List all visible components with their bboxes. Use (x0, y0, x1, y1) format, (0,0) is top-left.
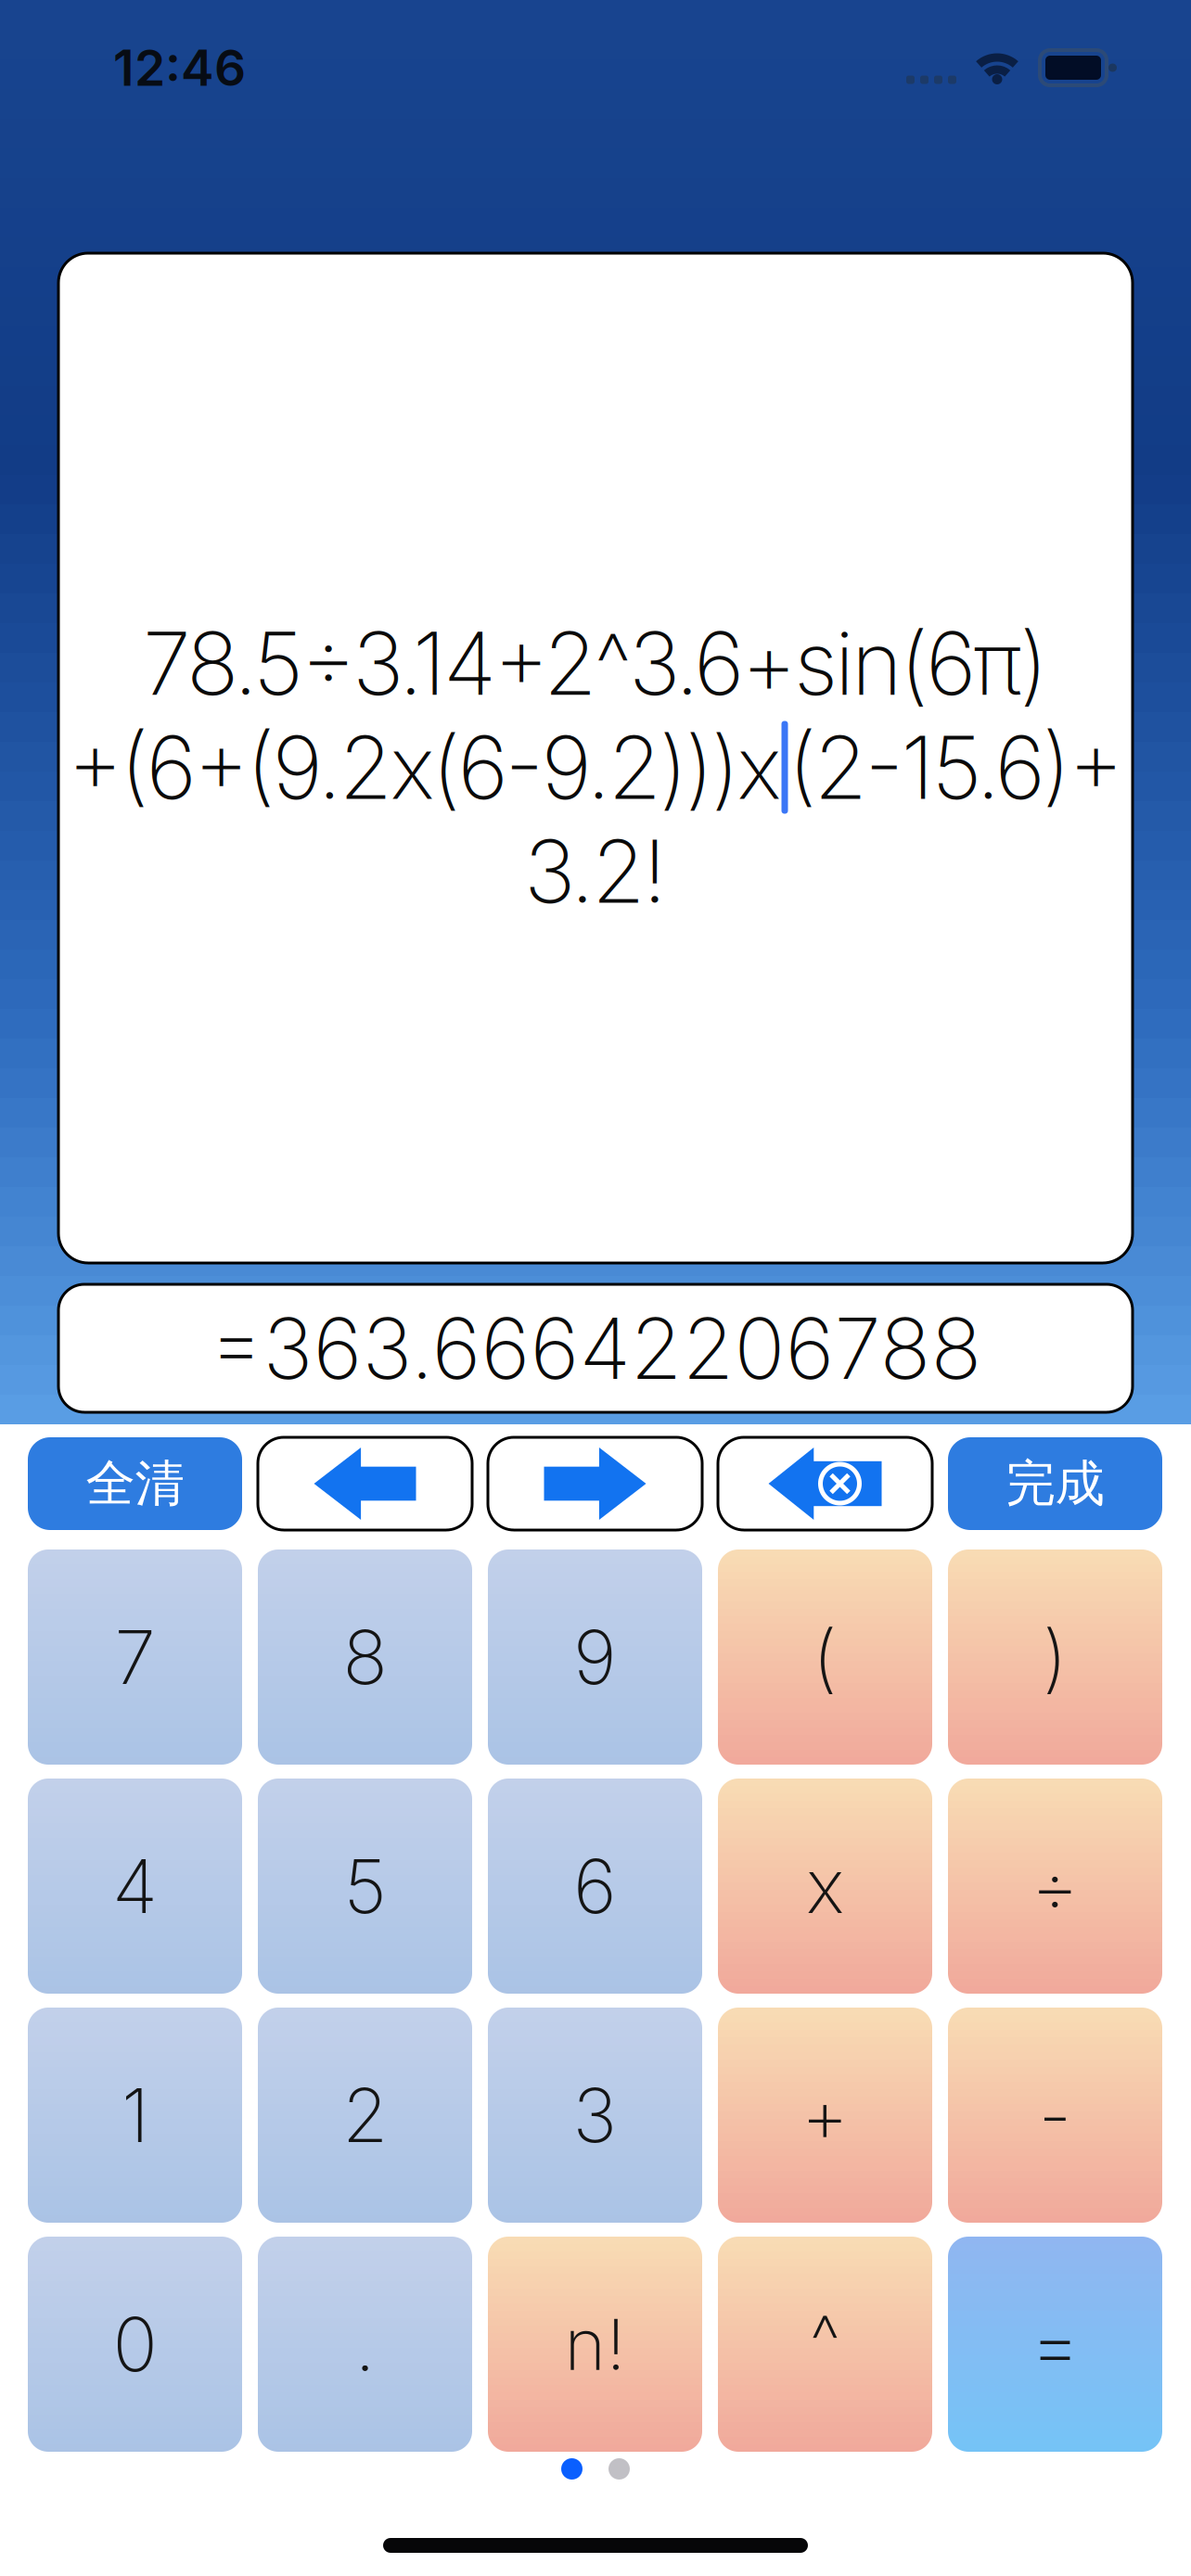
staticText: 2 (342, 2071, 388, 2159)
button[interactable]: 5 (258, 1779, 472, 1994)
button[interactable] (488, 1437, 702, 1530)
button[interactable]: 2 (258, 2008, 472, 2223)
staticText: 3.2! (524, 820, 667, 922)
staticText: 3 (573, 2071, 617, 2159)
button[interactable]: 全清 (28, 1437, 242, 1530)
staticText: 5 (344, 1842, 386, 1930)
button[interactable]: x (718, 1779, 932, 1994)
button[interactable]: 3 (488, 2008, 702, 2223)
button[interactable]: ^ (718, 2237, 932, 2452)
staticText: =363.66642206788 (209, 1299, 982, 1398)
staticText: - (1038, 2071, 1072, 2159)
button[interactable]: ) (948, 1549, 1162, 1765)
button[interactable]: 0 (28, 2237, 242, 2452)
staticText: +(6+(9.2x(6-9.2)))x (67, 716, 781, 818)
staticText: ÷ (1031, 1842, 1079, 1930)
button[interactable]: 9 (488, 1549, 702, 1765)
staticText: 6 (573, 1842, 617, 1930)
button[interactable] (258, 1437, 472, 1530)
button[interactable]: 4 (28, 1779, 242, 1994)
button[interactable]: ÷ (948, 1779, 1162, 1994)
button[interactable] (561, 2458, 630, 2480)
staticText: 78.5÷3.14+2^3.6+sin(6π) (143, 612, 1048, 714)
staticText: ^ (810, 2298, 840, 2383)
staticText: 全清 (86, 1453, 184, 1514)
staticText: x (806, 1842, 844, 1930)
button[interactable]: 1 (28, 2008, 242, 2223)
staticText: ( (813, 1613, 838, 1701)
staticText: 8 (343, 1613, 387, 1701)
button[interactable]: + (718, 2008, 932, 2223)
staticText: ) (1043, 1613, 1068, 1701)
button[interactable]: = (948, 2237, 1162, 2452)
staticText: 12:46 (113, 38, 246, 97)
staticText: n! (564, 2303, 626, 2386)
button[interactable]: n! (488, 2237, 702, 2452)
button[interactable]: 8 (258, 1549, 472, 1765)
staticText: = (1030, 2298, 1081, 2391)
staticText: 1 (121, 2071, 149, 2159)
button[interactable]: . (258, 2237, 472, 2452)
staticText: (2-15.6)+ (788, 716, 1124, 818)
staticText: 9 (573, 1613, 617, 1701)
staticText: 7 (115, 1613, 155, 1701)
staticText: . (355, 2300, 375, 2388)
button[interactable]: - (948, 2008, 1162, 2223)
button[interactable]: ( (718, 1549, 932, 1765)
button[interactable]: 6 (488, 1779, 702, 1994)
button[interactable]: 完成 (948, 1437, 1162, 1530)
staticText: 完成 (1006, 1453, 1104, 1514)
staticText: 4 (112, 1842, 158, 1930)
button[interactable] (718, 1437, 932, 1530)
staticText: + (801, 2071, 849, 2159)
button[interactable]: 7 (28, 1549, 242, 1765)
staticText: 0 (113, 2300, 157, 2388)
